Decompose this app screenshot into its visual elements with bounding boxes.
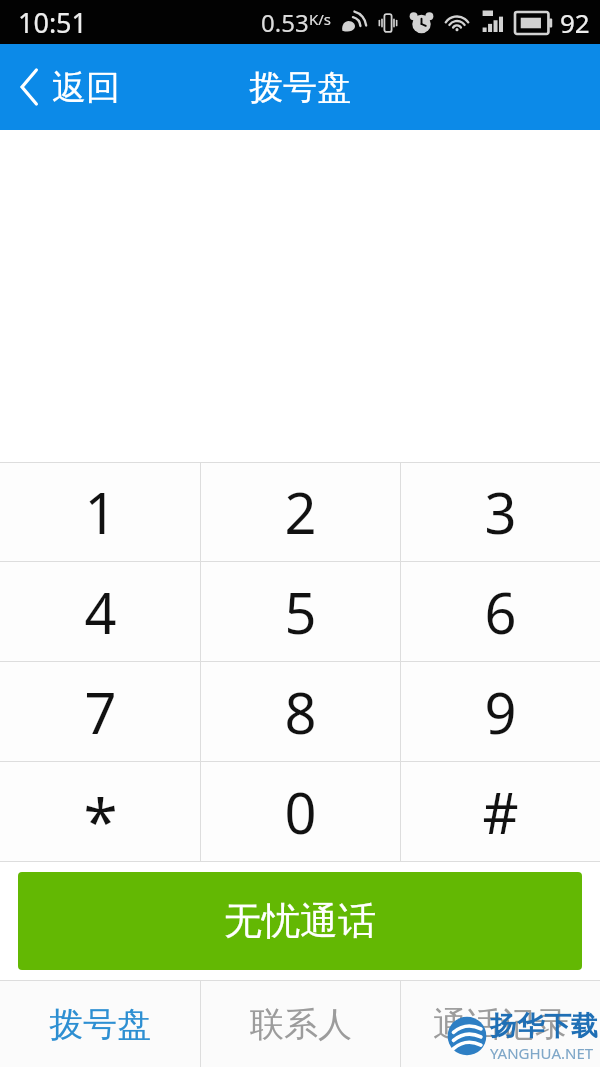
staticText: 0 xyxy=(284,774,317,850)
staticText: 拨号盘 xyxy=(49,1003,151,1046)
button[interactable]: 2 xyxy=(201,463,400,561)
button[interactable]: 9 xyxy=(401,662,600,761)
staticText: 10:51 xyxy=(18,4,88,41)
staticText: 2 xyxy=(284,474,317,550)
staticText: 5 xyxy=(284,574,317,650)
staticText: 6 xyxy=(484,574,517,650)
staticText: 3 xyxy=(484,474,517,550)
staticText: 通话记录 xyxy=(433,1003,569,1046)
button[interactable]: * xyxy=(0,762,200,861)
staticText: 4 xyxy=(84,574,117,650)
staticText: 7 xyxy=(84,674,117,750)
staticText: 返回 xyxy=(52,66,120,109)
staticText: 8 xyxy=(284,674,317,750)
staticText: 无忧通话 xyxy=(224,897,376,945)
staticText: 扬华下载 xyxy=(490,1009,598,1043)
button[interactable]: 0 xyxy=(201,762,400,861)
staticText: # xyxy=(482,774,519,850)
staticText: 拨号盘 xyxy=(249,66,351,109)
button[interactable]: 联系人 xyxy=(201,981,400,1067)
staticText: YANGHUA.NET xyxy=(490,1043,594,1063)
button[interactable]: 返回 xyxy=(0,44,140,130)
staticText: 92 xyxy=(560,5,590,40)
staticText: 0.53 xyxy=(261,6,309,39)
staticText: 1 xyxy=(84,474,117,550)
button[interactable]: 7 xyxy=(0,662,200,761)
button[interactable]: 4 xyxy=(0,562,200,661)
button[interactable]: 3 xyxy=(401,463,600,561)
staticText: * xyxy=(83,778,118,862)
button[interactable]: # xyxy=(401,762,600,861)
button[interactable]: 通话记录 xyxy=(401,981,600,1067)
button[interactable]: 5 xyxy=(201,562,400,661)
button[interactable]: 无忧通话 xyxy=(18,872,582,970)
staticText: K/s xyxy=(309,9,332,29)
button[interactable]: 拨号盘 xyxy=(0,981,200,1067)
button[interactable]: 6 xyxy=(401,562,600,661)
button[interactable]: 1 xyxy=(0,463,200,561)
button[interactable]: 8 xyxy=(201,662,400,761)
staticText: 9 xyxy=(484,674,517,750)
staticText: 联系人 xyxy=(250,1003,352,1046)
